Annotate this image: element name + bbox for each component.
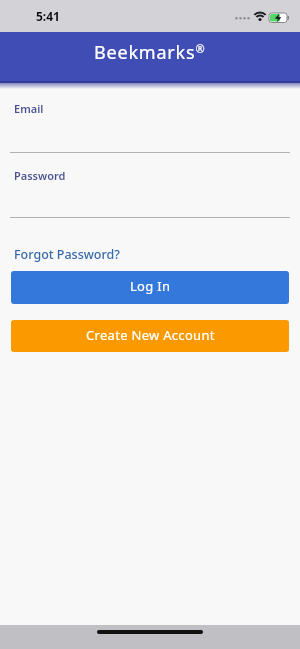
button[interactable]: Forgot Password? — [14, 246, 120, 263]
button[interactable] — [10, 183, 290, 218]
staticText: Create New Account — [86, 326, 215, 344]
button[interactable] — [10, 116, 290, 153]
staticText: Password — [14, 168, 66, 183]
staticText: 5:41 — [36, 8, 60, 24]
button[interactable]: Create New Account — [11, 320, 289, 352]
staticText: Beekmarks® — [94, 40, 206, 65]
staticText: Log In — [130, 277, 171, 295]
staticText: Email — [14, 101, 44, 116]
button[interactable]: Log In — [11, 271, 289, 304]
